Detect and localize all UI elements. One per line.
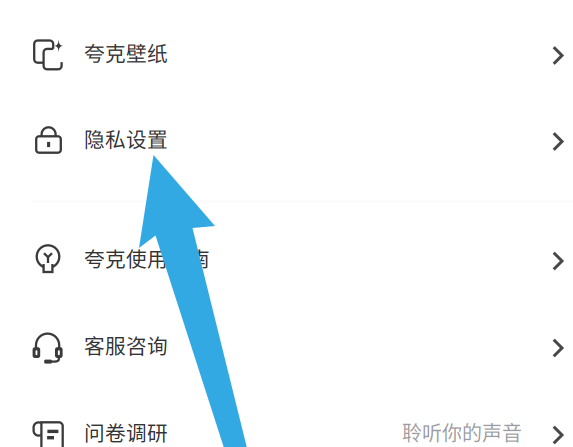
staticText: 客服咨询 — [84, 330, 168, 360]
staticText: 问卷调研 — [84, 417, 168, 447]
button[interactable]: 隐私设置 — [0, 95, 573, 181]
button[interactable]: 问卷调研 — [0, 388, 573, 447]
button[interactable]: 夸克使用指南 — [0, 214, 573, 301]
staticText: 隐私设置 — [84, 123, 168, 153]
staticText: 夸克壁纸 — [84, 37, 168, 67]
staticText: 夸克使用指南 — [84, 243, 210, 273]
staticText: 聆听你的声音 — [402, 417, 522, 446]
button[interactable]: 夸克壁纸 — [0, 9, 573, 95]
button[interactable]: 客服咨询 — [0, 301, 573, 388]
